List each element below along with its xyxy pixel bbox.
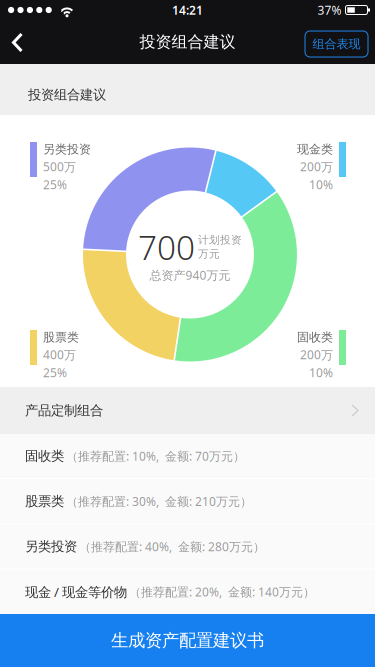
staticText: 14:21 (172, 2, 203, 18)
button[interactable]: 组合表现 (305, 31, 368, 57)
staticText: 37% (317, 2, 341, 18)
staticText: 500万 (43, 159, 76, 175)
staticText: 现金 / 现金等价物 (25, 583, 127, 601)
staticText: 总资产940万元 (149, 267, 230, 283)
staticText: 股票类 (25, 493, 64, 510)
staticText: 投资组合建议 (139, 32, 235, 52)
staticText: （推荐配置: 30%, 金额: 210万元） (66, 493, 252, 509)
staticText: （推荐配置: 40%, 金额: 280万元） (79, 539, 265, 555)
button[interactable]: 产品定制组合 (0, 387, 375, 434)
staticText: 组合表现 (312, 37, 360, 51)
staticText: 10% (309, 177, 333, 193)
staticText: 生成资产配置建议书 (111, 630, 264, 651)
staticText: 25% (43, 177, 67, 193)
staticText: （推荐配置: 20%, 金额: 140万元） (129, 584, 315, 600)
staticText: 10% (309, 365, 333, 381)
staticText: 200万 (300, 159, 333, 175)
staticText: 计划投资 (198, 233, 242, 246)
staticText: 固收类 (297, 330, 333, 345)
staticText: （推荐配置: 10%, 金额: 70万元） (66, 448, 245, 464)
staticText: 700 (138, 225, 195, 269)
staticText: 投资组合建议 (28, 87, 106, 103)
staticText: 股票类 (43, 330, 79, 345)
staticText: 另类投资 (43, 142, 91, 157)
staticText: 25% (43, 365, 67, 381)
staticText: 200万 (300, 347, 333, 363)
staticText: 另类投资 (25, 538, 77, 555)
staticText: 固收类 (25, 448, 64, 464)
button[interactable]: 生成资产配置建议书 (0, 614, 375, 667)
staticText: 400万 (43, 347, 76, 363)
staticText: 现金类 (297, 142, 333, 157)
staticText: 产品定制组合 (25, 402, 103, 419)
button[interactable]: Back (0, 20, 44, 64)
staticText: 万元 (198, 247, 220, 261)
